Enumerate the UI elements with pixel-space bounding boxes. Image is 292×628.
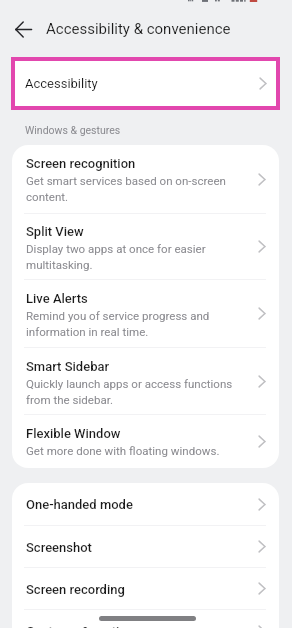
button[interactable]: Split View — [12, 214, 279, 279]
button[interactable]: Flexible Window — [12, 415, 279, 468]
staticText: Remind you of service progress and infor… — [26, 307, 251, 339]
staticText: Live Alerts — [26, 290, 88, 307]
staticText: Split View — [26, 223, 84, 240]
staticText: Screen recording — [26, 581, 125, 598]
button[interactable]: Accessibility — [15, 61, 276, 106]
button[interactable]: Back — [8, 14, 38, 44]
staticText: Screen recognition — [26, 155, 136, 172]
button[interactable]: Screen recognition — [12, 145, 279, 213]
staticText: Get more done with floating windows. — [26, 442, 220, 458]
staticText: Accessibility — [25, 75, 98, 92]
button[interactable]: Live Alerts — [12, 280, 279, 347]
staticText: Screenshot — [26, 539, 92, 556]
button[interactable]: Screenshot — [12, 526, 279, 567]
staticText: Windows & gestures — [25, 124, 121, 136]
staticText: Accessibility & convenience — [46, 20, 231, 38]
staticText: Smart Sidebar — [26, 358, 110, 375]
button[interactable]: Gestures & motions — [12, 610, 279, 628]
button[interactable]: One-handed mode — [12, 483, 279, 525]
staticText: Gestures & motions — [26, 623, 141, 628]
staticText: Quickly launch apps or access functions … — [26, 375, 251, 407]
staticText: Flexible Window — [26, 425, 121, 442]
staticText: One-handed mode — [26, 496, 133, 513]
button[interactable]: Screen recording — [12, 568, 279, 609]
button[interactable]: Smart Sidebar — [12, 348, 279, 414]
staticText: Display two apps at once for easier mult… — [26, 240, 251, 272]
staticText: Get smart services based on on-screen co… — [26, 172, 251, 204]
